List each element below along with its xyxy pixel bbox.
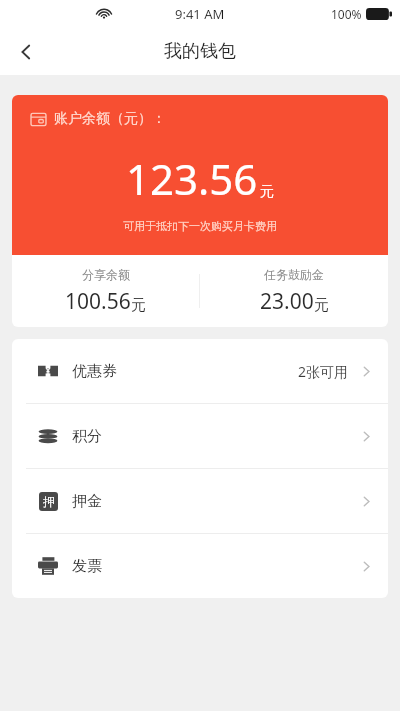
staticText: 23.00 <box>260 287 314 316</box>
staticText: 元 <box>314 296 329 315</box>
staticText: 账户余额（元）： <box>54 110 166 128</box>
staticText: 100% <box>331 6 362 22</box>
staticText: 元 <box>131 296 146 315</box>
staticText: 分享余额 <box>82 267 130 282</box>
staticText: 积分 <box>72 427 102 446</box>
staticText: 押金 <box>72 492 102 511</box>
staticText: 123.56 <box>126 150 258 207</box>
button[interactable]: 发票 <box>12 534 388 598</box>
button[interactable]: Back <box>0 28 52 75</box>
staticText: 任务鼓励金 <box>264 267 324 282</box>
staticText: 2张可用 <box>298 362 349 381</box>
button[interactable]: 积分 <box>12 404 388 468</box>
staticText: 9:41 AM <box>175 5 225 23</box>
staticText: 发票 <box>72 557 102 576</box>
button[interactable]: 任务鼓励金 <box>200 267 388 316</box>
staticText: 我的钱包 <box>164 40 236 63</box>
button[interactable]: 押 <box>12 469 388 533</box>
button[interactable]: 分享余额 <box>12 267 199 316</box>
staticText: 押 <box>43 494 55 509</box>
button[interactable]: 优惠券 <box>12 339 388 403</box>
staticText: 优惠券 <box>72 362 117 381</box>
staticText: 元 <box>260 183 274 201</box>
staticText: 可用于抵扣下一次购买月卡费用 <box>123 219 277 233</box>
staticText: 100.56 <box>65 287 131 316</box>
